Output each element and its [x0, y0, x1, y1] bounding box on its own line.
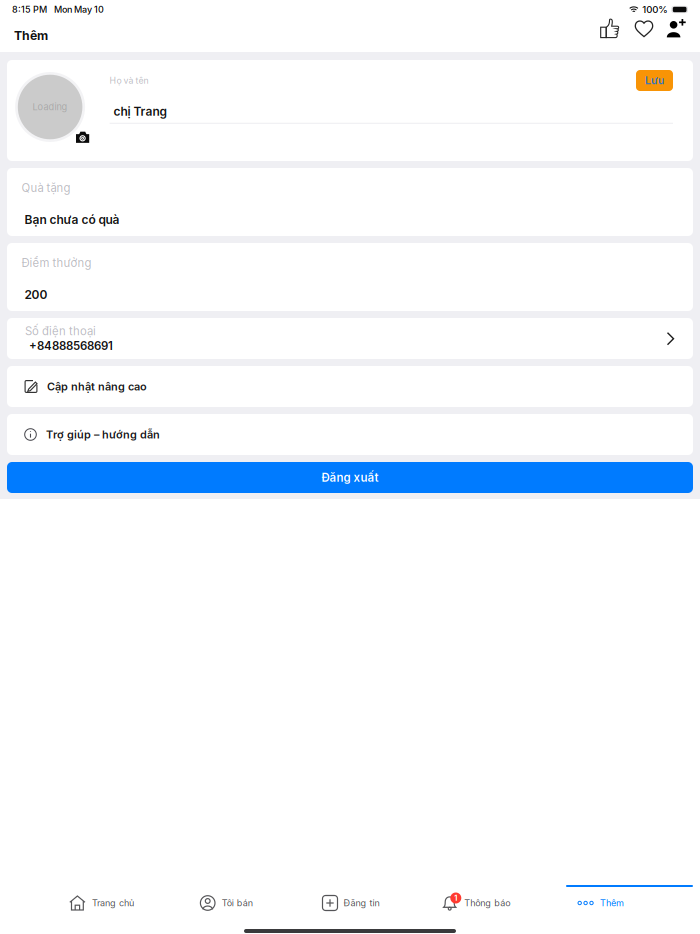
- staticText: Thêm: [14, 28, 48, 43]
- staticText: Mon May 10: [54, 4, 104, 15]
- button[interactable]: Tôi bán: [164, 885, 289, 921]
- button[interactable]: Đăng xuất: [7, 462, 693, 493]
- button[interactable]: Add friend: [660, 25, 686, 46]
- staticText: Lưu: [645, 74, 664, 87]
- staticText: Thêm: [600, 897, 624, 908]
- staticText: Quà tặng: [21, 181, 70, 195]
- staticText: Họ và tên: [110, 75, 149, 86]
- button[interactable]: Thêm: [538, 885, 663, 921]
- staticText: 1: [454, 894, 457, 902]
- staticText: Đăng xuất: [321, 471, 378, 484]
- staticText: Bạn chưa có quà: [24, 212, 119, 227]
- staticText: 8:15 PM: [12, 4, 47, 15]
- staticText: 200: [24, 287, 47, 302]
- staticText: Cập nhật nâng cao: [47, 380, 147, 393]
- staticText: chị Trang: [114, 104, 168, 119]
- button[interactable]: Favourites: [628, 25, 660, 46]
- staticText: +84888568691: [29, 339, 113, 353]
- button[interactable]: Cập nhật nâng cao: [7, 366, 693, 407]
- staticText: 100%: [642, 4, 668, 15]
- button[interactable]: Lưu: [636, 70, 673, 91]
- staticText: Thông báo: [464, 897, 510, 908]
- staticText: Trang chủ: [92, 897, 134, 908]
- button[interactable]: Đăng tin: [289, 885, 413, 921]
- button[interactable]: Trang chủ: [39, 885, 164, 921]
- button[interactable]: Likes: [594, 25, 628, 46]
- button[interactable]: 1: [413, 885, 538, 921]
- button[interactable]: Trợ giúp – hướng dẫn: [7, 414, 693, 455]
- staticText: Tôi bán: [222, 897, 253, 908]
- staticText: Loading: [33, 101, 68, 112]
- staticText: Đăng tin: [343, 897, 379, 908]
- staticText: Trợ giúp – hướng dẫn: [46, 428, 160, 441]
- staticText: Số điện thoại: [25, 324, 96, 338]
- button[interactable]: Số điện thoại: [7, 318, 693, 359]
- staticText: Điểm thưởng: [21, 256, 91, 270]
